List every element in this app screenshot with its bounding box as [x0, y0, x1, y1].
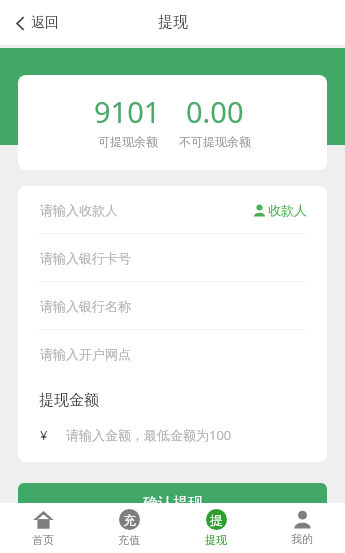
staticText: 收款人 — [268, 202, 307, 218]
button[interactable]: 首页 — [0, 505, 86, 551]
button[interactable]: 选择收款人 — [253, 202, 307, 218]
staticText: 提现 — [158, 13, 188, 32]
button[interactable]: ¥ — [18, 422, 327, 448]
button[interactable]: 提 — [173, 505, 259, 551]
staticText: 不可提现余额 — [179, 134, 251, 149]
button[interactable]: 请输入银行卡号 — [18, 234, 327, 281]
staticText: 请输入金额，最低金额为100 — [66, 426, 232, 444]
staticText: 9101 — [94, 92, 161, 131]
staticText: 可提现余额 — [98, 134, 158, 149]
button[interactable]: 返回 — [12, 10, 63, 36]
staticText: 我的 — [291, 532, 313, 546]
staticText: 返回 — [31, 14, 59, 32]
button[interactable]: 请输入收款人 — [18, 186, 327, 233]
staticText: 请输入银行名称 — [40, 298, 131, 314]
button[interactable]: 请输入银行名称 — [18, 282, 327, 329]
staticText: 请输入开户网点 — [40, 346, 131, 362]
button[interactable]: 9101 — [18, 75, 327, 170]
staticText: 0.00 — [186, 92, 244, 131]
button[interactable]: 充 — [86, 505, 172, 551]
staticText: 提 — [210, 512, 223, 528]
staticText: 请输入收款人 — [40, 202, 118, 218]
staticText: 充 — [123, 512, 136, 528]
staticText: 充值 — [118, 533, 140, 547]
staticText: 首页 — [32, 533, 54, 547]
staticText: 提现 — [205, 533, 227, 547]
button[interactable]: 我的 — [259, 506, 345, 550]
staticText: 确认提现 — [143, 494, 203, 513]
button[interactable]: 请输入开户网点 — [18, 330, 327, 377]
staticText: 提现金额 — [39, 391, 99, 410]
staticText: 请输入银行卡号 — [40, 250, 131, 266]
button[interactable]: 确认提现 — [18, 483, 327, 523]
staticText: ¥ — [40, 426, 48, 444]
